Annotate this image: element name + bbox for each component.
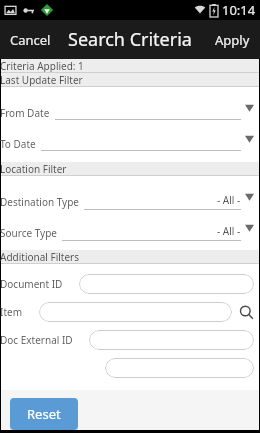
staticText: - All -	[217, 193, 241, 207]
staticText: Document ID	[0, 277, 63, 291]
staticText: Doc External ID	[0, 333, 73, 347]
staticText: Item	[0, 305, 22, 319]
staticText: Criteria Applied: 1	[0, 59, 84, 72]
staticText: Reset	[27, 405, 61, 423]
staticText: Search Criteria	[68, 27, 192, 52]
staticText: 10:14	[222, 1, 256, 19]
button[interactable]: Reset	[10, 398, 78, 430]
button[interactable]	[39, 302, 232, 322]
button[interactable]	[105, 358, 254, 378]
staticText: - All -	[217, 224, 241, 238]
staticText: Cancel	[10, 31, 51, 49]
button[interactable]: From Date	[1, 97, 259, 128]
button[interactable]: Destination Type	[1, 186, 259, 217]
staticText: Destination Type	[0, 195, 79, 209]
button[interactable]: Source Type	[1, 217, 259, 248]
button[interactable]	[79, 274, 254, 294]
button[interactable]	[89, 330, 254, 350]
staticText: To Date	[0, 137, 36, 151]
staticText: Source Type	[0, 226, 57, 240]
button[interactable]: Cancel	[0, 23, 61, 57]
staticText: From Date	[0, 106, 50, 120]
staticText: Apply	[215, 31, 250, 49]
button[interactable]: To Date	[1, 128, 259, 159]
button[interactable]: Search item	[236, 302, 256, 322]
staticText: Last Update Filter	[0, 73, 83, 86]
staticText: Additional Filters	[0, 250, 79, 263]
button[interactable]: Apply	[205, 23, 260, 57]
staticText: Location Filter	[0, 162, 67, 175]
